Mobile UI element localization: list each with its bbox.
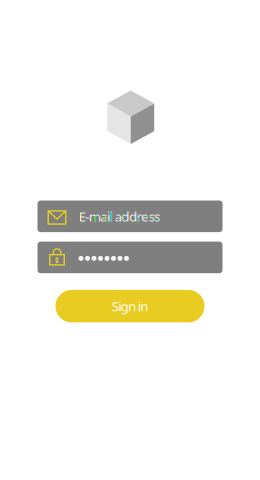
staticText: E-mail address [78, 207, 160, 225]
staticText: Sign in [112, 297, 148, 315]
button[interactable]: Sign in [55, 290, 204, 322]
button[interactable] [37, 242, 222, 273]
button[interactable]: E-mail address [37, 200, 222, 232]
